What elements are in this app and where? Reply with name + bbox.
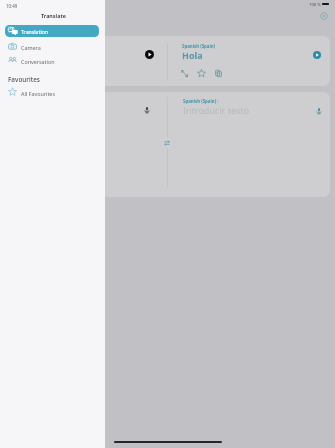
staticText: Camera: [21, 44, 41, 51]
button[interactable]: Microphone: [95, 92, 330, 197]
staticText: All Favourites: [21, 90, 55, 97]
button[interactable]: Conversation: [5, 55, 99, 66]
button[interactable]: Copy: [214, 69, 223, 78]
button[interactable]: Swap languages: [162, 138, 172, 148]
button[interactable]: Camera: [5, 41, 99, 52]
button[interactable]: Microphone: [143, 106, 151, 114]
staticText: Hola: [182, 49, 203, 61]
button[interactable]: Play translation: [313, 51, 321, 59]
button[interactable]: Translation: [5, 25, 99, 37]
staticText: 100 %: [309, 2, 321, 8]
staticText: Introducir texto: [183, 104, 250, 116]
button[interactable]: Settings: [320, 12, 328, 20]
button[interactable]: Play source: [145, 50, 154, 59]
staticText: Spanish (Spain) :: [183, 98, 219, 104]
button[interactable]: Favourite: [197, 69, 206, 78]
button[interactable]: Play source: [95, 36, 330, 86]
button[interactable]: Voice input: [315, 107, 323, 115]
staticText: Spanish (Spain): [182, 43, 216, 49]
staticText: Translate: [41, 12, 66, 19]
staticText: 10:49: [6, 3, 18, 9]
button[interactable]: All Favourites: [5, 87, 99, 98]
staticText: Translation: [21, 28, 49, 35]
button[interactable]: Expand: [180, 69, 189, 78]
staticText: Favourites: [8, 75, 40, 84]
staticText: Conversation: [21, 58, 55, 65]
